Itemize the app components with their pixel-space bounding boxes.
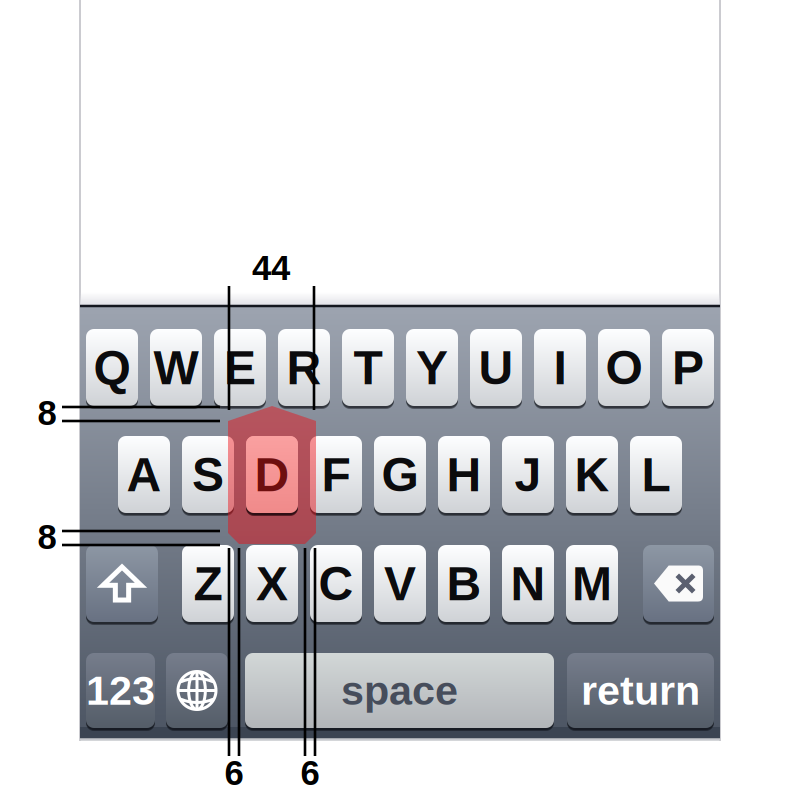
staticText: M [572, 557, 612, 610]
button[interactable]: N [502, 543, 554, 624]
staticText: H [446, 448, 481, 501]
staticText: 123 [86, 667, 155, 714]
staticText: 6 [300, 754, 319, 792]
staticText: F [321, 448, 350, 501]
staticText: R [286, 341, 321, 394]
button[interactable]: W [150, 327, 202, 408]
button[interactable]: A [118, 434, 170, 515]
button[interactable]: Delete [643, 543, 714, 624]
button[interactable]: E [214, 327, 266, 408]
staticText: J [514, 448, 541, 501]
staticText: P [672, 341, 704, 394]
button[interactable]: Next keyboard [166, 651, 228, 730]
button[interactable]: F [310, 434, 362, 515]
staticText: Q [93, 341, 130, 394]
staticText: Z [193, 557, 222, 610]
button[interactable]: T [342, 327, 394, 408]
button[interactable]: U [470, 327, 522, 408]
staticText: 44 [252, 249, 290, 287]
button[interactable]: D [246, 434, 298, 515]
button[interactable]: Z [182, 543, 234, 624]
button[interactable]: J [502, 434, 554, 515]
button[interactable]: P [662, 327, 714, 408]
button[interactable]: K [566, 434, 618, 515]
staticText: V [384, 557, 416, 610]
staticText: A [126, 448, 161, 501]
staticText: N [510, 557, 545, 610]
button[interactable]: return [567, 651, 714, 730]
button[interactable]: Y [406, 327, 458, 408]
staticText: space [341, 667, 458, 714]
staticText: D [254, 448, 289, 501]
button[interactable]: Shift [86, 543, 158, 624]
button[interactable]: I [534, 327, 586, 408]
staticText: O [605, 341, 642, 394]
staticText: D [254, 448, 289, 501]
button[interactable]: C [310, 543, 362, 624]
staticText: T [353, 341, 382, 394]
staticText: U [478, 341, 513, 394]
staticText: return [581, 667, 700, 714]
staticText: K [574, 448, 609, 501]
button[interactable]: D [246, 434, 298, 515]
button[interactable]: O [598, 327, 650, 408]
staticText: W [153, 341, 198, 394]
staticText: C [318, 557, 353, 610]
staticText: Y [416, 341, 448, 394]
button[interactable]: M [566, 543, 618, 624]
button[interactable]: Q [86, 327, 138, 408]
button[interactable]: B [438, 543, 490, 624]
staticText: S [192, 448, 224, 501]
button[interactable]: H [438, 434, 490, 515]
button[interactable]: space [245, 651, 554, 730]
staticText: X [256, 557, 288, 610]
button[interactable]: X [246, 543, 298, 624]
button[interactable]: R [278, 327, 330, 408]
button[interactable]: V [374, 543, 426, 624]
staticText: I [553, 341, 566, 394]
button[interactable]: 123 [86, 651, 155, 730]
staticText: E [224, 341, 256, 394]
staticText: 6 [224, 754, 243, 792]
staticText: 8 [37, 518, 56, 556]
staticText: L [641, 448, 670, 501]
button[interactable]: G [374, 434, 426, 515]
button[interactable]: S [182, 434, 234, 515]
staticText: G [381, 448, 418, 501]
staticText: 8 [37, 394, 56, 432]
staticText: B [446, 557, 481, 610]
button[interactable]: L [630, 434, 682, 515]
